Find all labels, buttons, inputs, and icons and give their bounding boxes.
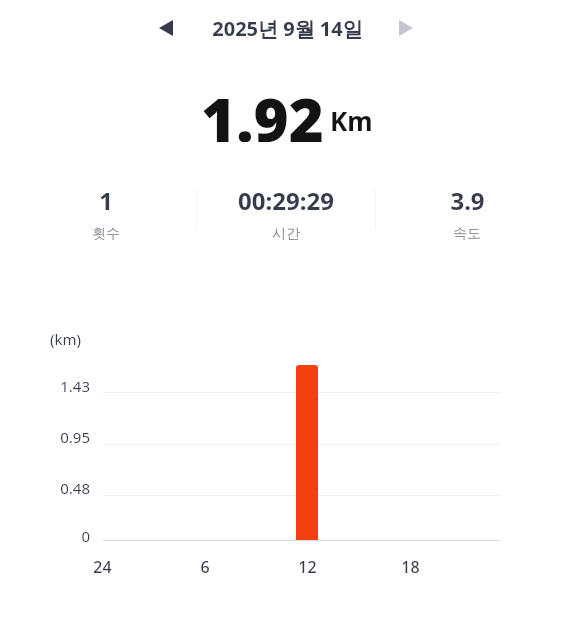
- staticText: 0: [81, 526, 90, 546]
- button[interactable]: 2025년 9월 14일: [187, 8, 387, 48]
- staticText: 12: [298, 556, 317, 578]
- staticText: 0.48: [60, 478, 90, 498]
- staticText: 18: [401, 556, 420, 578]
- staticText: 횟수: [92, 225, 120, 242]
- staticText: 1: [99, 184, 113, 217]
- staticText: 시간: [272, 225, 300, 242]
- staticText: 24: [93, 556, 112, 578]
- button[interactable]: 이전 날짜: [148, 10, 184, 46]
- staticText: 6: [200, 556, 210, 578]
- button[interactable]: 1: [31, 180, 181, 242]
- button[interactable]: 다음 날짜: [388, 10, 424, 46]
- button[interactable]: 3.9: [392, 180, 542, 242]
- button[interactable]: 12시 거리 1.92 km: [296, 365, 318, 540]
- button[interactable]: 00:29:29: [211, 180, 361, 242]
- staticText: 0.95: [60, 427, 90, 447]
- staticText: Km: [330, 103, 373, 138]
- staticText: 00:29:29: [238, 184, 334, 217]
- staticText: 1.92: [201, 78, 324, 142]
- staticText: 3.9: [450, 184, 485, 217]
- staticText: 2025년 9월 14일: [212, 15, 363, 42]
- staticText: (km): [50, 329, 82, 349]
- staticText: 1.43: [60, 376, 90, 396]
- staticText: 속도: [453, 225, 481, 242]
